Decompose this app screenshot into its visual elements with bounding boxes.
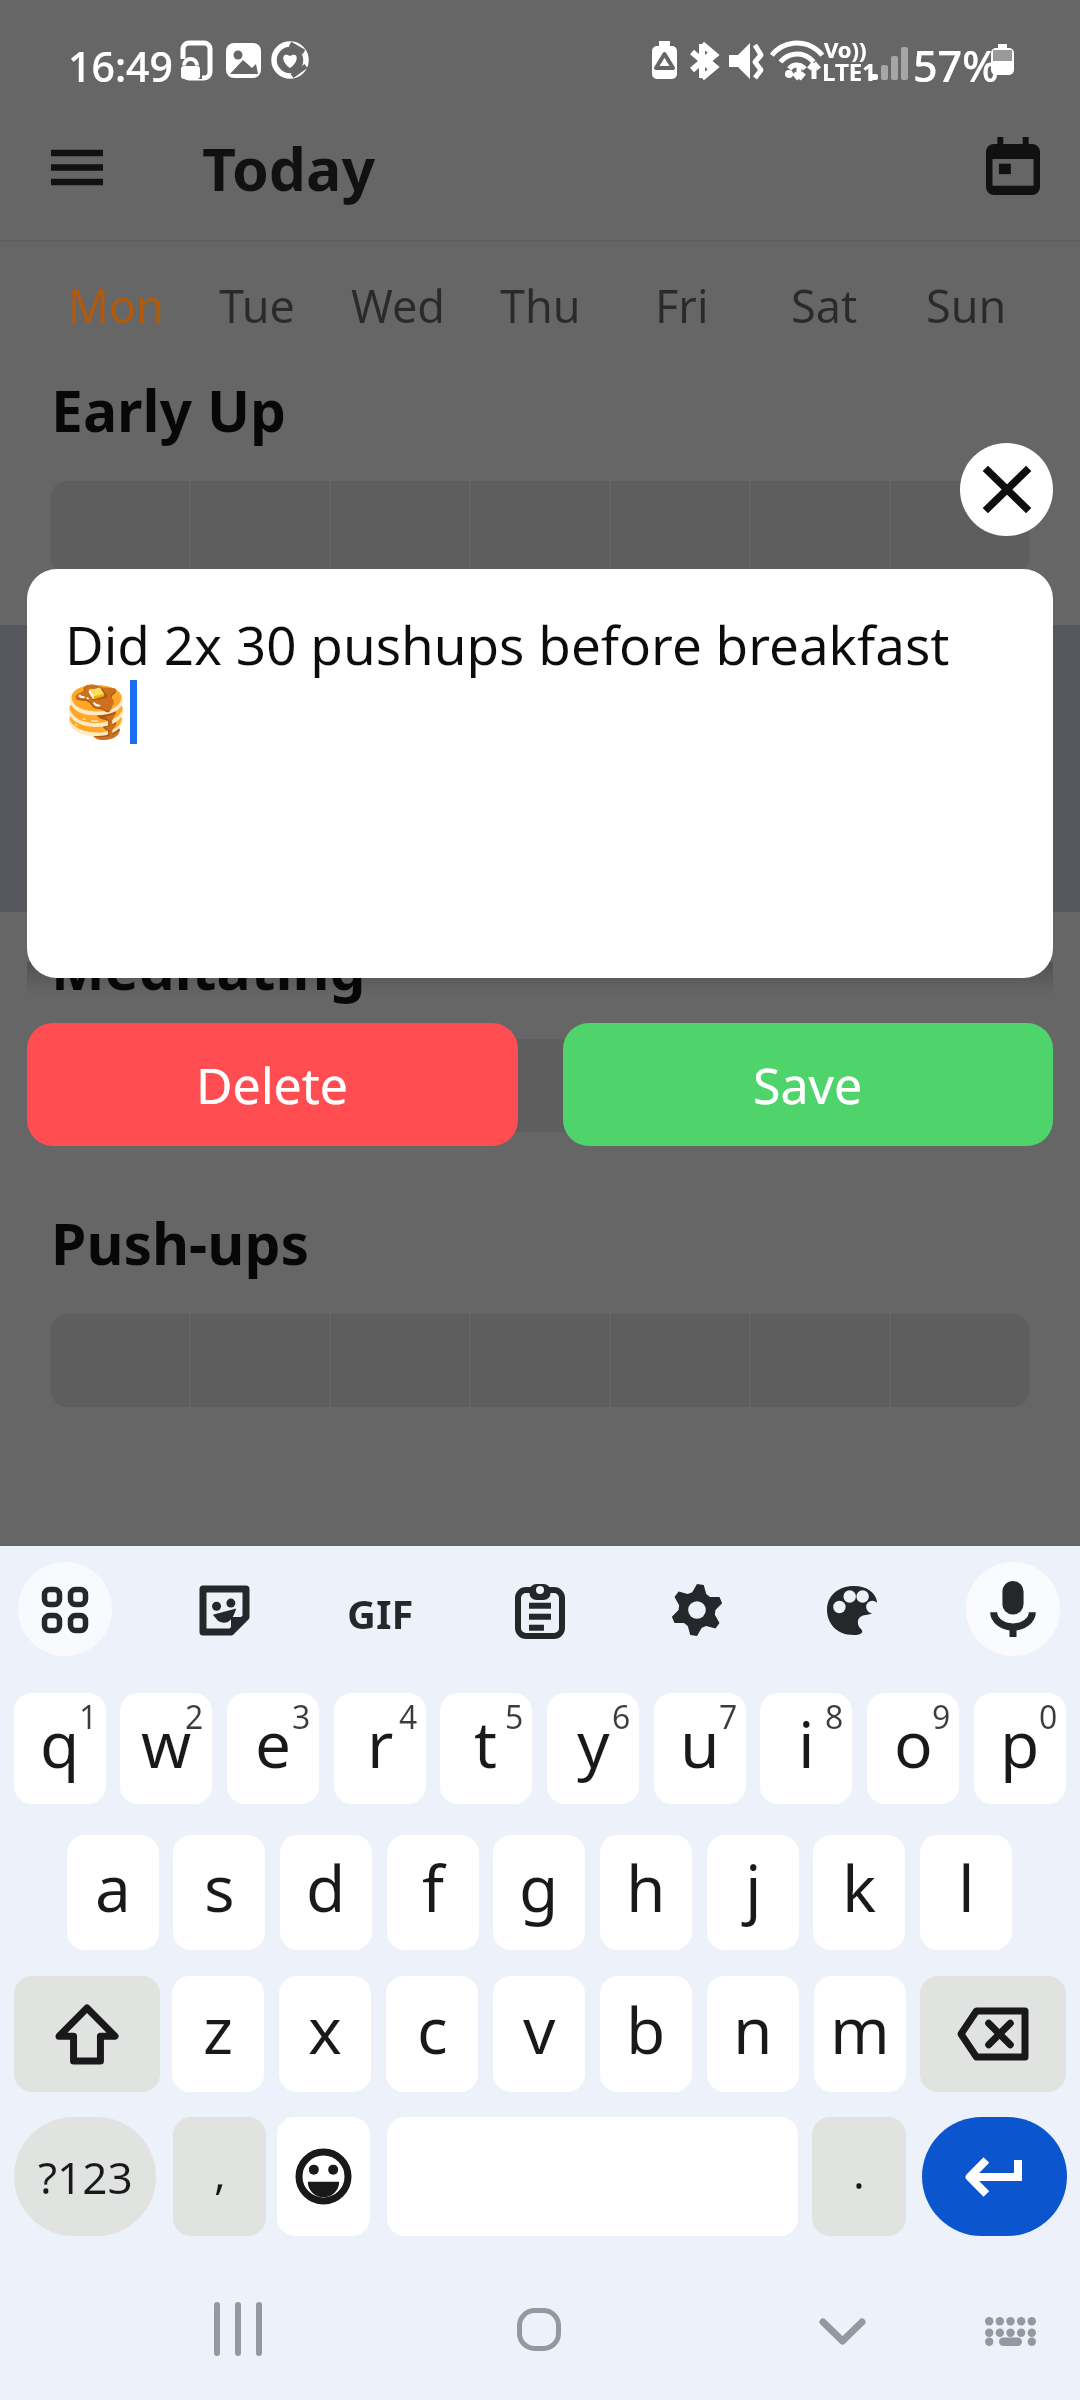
staticText: a [95, 1844, 131, 1931]
staticText: w [141, 1700, 192, 1787]
button[interactable]: f [387, 1835, 479, 1950]
button[interactable]: l [920, 1835, 1012, 1950]
button[interactable]: g [493, 1835, 585, 1950]
button[interactable]: Calendar [966, 120, 1060, 212]
button[interactable] [51, 481, 189, 574]
staticText: Save [753, 1051, 863, 1119]
button[interactable]: Enter [922, 2117, 1067, 2236]
button[interactable]: Recents [178, 2279, 298, 2379]
button[interactable]: Menu [28, 120, 126, 215]
button[interactable]: Save [563, 1023, 1053, 1146]
button[interactable]: w [120, 1693, 212, 1804]
button[interactable]: Close [960, 443, 1053, 536]
button[interactable]: Apps [18, 1563, 112, 1657]
staticText: Wed [351, 275, 446, 336]
button[interactable]: n [707, 1976, 799, 2092]
button[interactable]: s [173, 1835, 265, 1950]
staticText: 5 [505, 1695, 524, 1739]
button[interactable]: , [173, 2117, 266, 2236]
button[interactable] [191, 481, 329, 574]
button[interactable]: Settings [650, 1563, 744, 1657]
button[interactable]: d [280, 1835, 372, 1950]
button[interactable]: z [172, 1976, 264, 2092]
button[interactable]: o [867, 1693, 959, 1804]
button[interactable] [891, 481, 1029, 574]
staticText: Early Up [51, 371, 287, 449]
staticText: y [577, 1700, 610, 1787]
button[interactable]: m [814, 1976, 906, 2092]
staticText: 57% [913, 36, 999, 95]
staticText: Did 2x 30 pushups before breakfast [65, 608, 950, 680]
button[interactable]: a [67, 1835, 159, 1950]
button[interactable]: c [386, 1976, 478, 2092]
button[interactable]: Thu [469, 250, 611, 360]
staticText: q [40, 1700, 80, 1787]
staticText: j [745, 1844, 762, 1931]
button[interactable]: . [812, 2117, 906, 2236]
button[interactable]: x [279, 1976, 371, 2092]
staticText: 0 [1039, 1695, 1058, 1739]
staticText: Thu [500, 275, 581, 336]
staticText: s [204, 1844, 235, 1931]
button[interactable]: ?123 [14, 2117, 156, 2236]
button[interactable]: h [600, 1835, 692, 1950]
button[interactable]: Theme [807, 1563, 901, 1657]
staticText: h [626, 1844, 666, 1931]
button[interactable]: Delete [27, 1023, 518, 1146]
button[interactable]: Backspace [920, 1976, 1066, 2092]
button[interactable]: Emoji [277, 2117, 370, 2236]
button[interactable]: k [813, 1835, 905, 1950]
button[interactable] [331, 1039, 469, 1132]
staticText: 6 [612, 1695, 631, 1739]
button[interactable]: p [974, 1693, 1066, 1804]
staticText: 16:49 [68, 38, 173, 94]
button[interactable]: Shift [14, 1976, 160, 2092]
button[interactable]: Sun [895, 250, 1037, 360]
button[interactable]: u [654, 1693, 746, 1804]
staticText: LTE1 [822, 55, 876, 88]
button[interactable]: Wed [327, 250, 469, 360]
button[interactable] [331, 481, 469, 574]
button[interactable]: Back [782, 2281, 902, 2381]
button[interactable]: y [547, 1693, 639, 1804]
button[interactable]: Mon [45, 250, 186, 360]
button[interactable]: Tue [186, 250, 327, 360]
staticText: ?123 [38, 2147, 133, 2207]
button[interactable]: q [14, 1693, 106, 1804]
button[interactable]: Hide keyboard [950, 2281, 1070, 2381]
button[interactable]: b [600, 1976, 692, 2092]
staticText: Tue [219, 275, 295, 336]
button[interactable]: Sat [753, 250, 895, 360]
button[interactable]: Home [479, 2279, 599, 2379]
button[interactable] [471, 1039, 609, 1132]
button[interactable]: Fri [611, 250, 753, 360]
button[interactable]: e [227, 1693, 319, 1804]
button[interactable]: Stickers [177, 1563, 271, 1657]
button[interactable]: i [760, 1693, 852, 1804]
button[interactable]: j [707, 1835, 799, 1950]
button[interactable]: r [334, 1693, 426, 1804]
button[interactable]: v [493, 1976, 585, 2092]
button[interactable]: t [440, 1693, 532, 1804]
button[interactable] [751, 481, 889, 574]
button[interactable]: Clipboard [493, 1563, 587, 1657]
button[interactable]: Voice input [966, 1562, 1060, 1656]
staticText: f [422, 1844, 445, 1931]
button[interactable] [471, 481, 609, 574]
button[interactable] [751, 1039, 889, 1132]
staticText: , [214, 2142, 226, 2202]
button[interactable] [611, 481, 749, 574]
staticText: 4 [399, 1695, 418, 1739]
button[interactable] [191, 1039, 329, 1132]
